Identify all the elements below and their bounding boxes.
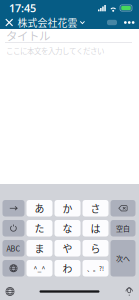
button[interactable]: Delete — [110, 200, 135, 216]
staticText: ここに本文を入力してください — [6, 45, 104, 56]
staticText: は — [90, 221, 100, 235]
button[interactable] — [54, 200, 80, 216]
button[interactable] — [2, 240, 24, 256]
button[interactable]: Preview — [107, 16, 117, 29]
button[interactable] — [82, 200, 108, 216]
staticText: あ — [34, 201, 44, 215]
staticText: わ — [62, 261, 72, 275]
button[interactable]: More options — [117, 16, 139, 29]
staticText: た — [34, 221, 44, 235]
staticText: な — [62, 221, 72, 235]
staticText: ^_^ — [33, 263, 45, 273]
staticText: 、。?! — [87, 264, 104, 273]
staticText: ら — [90, 241, 100, 255]
staticText: ま — [34, 241, 44, 255]
staticText: や — [62, 241, 72, 255]
button[interactable]: Previous candidate — [2, 200, 24, 216]
button[interactable] — [82, 220, 108, 236]
button[interactable] — [26, 200, 52, 216]
button[interactable]: Emoji — [2, 260, 24, 276]
button[interactable] — [26, 240, 52, 256]
button[interactable]: 株式会社花雲 — [17, 16, 85, 29]
button[interactable] — [82, 240, 108, 256]
staticText: か — [62, 201, 72, 215]
button[interactable] — [110, 240, 135, 276]
staticText: さ — [90, 201, 100, 215]
button[interactable] — [26, 220, 52, 236]
staticText: 株式会社花雲 — [17, 15, 77, 30]
button[interactable]: Close — [0, 16, 17, 29]
button[interactable] — [54, 240, 80, 256]
button[interactable] — [82, 260, 108, 276]
button[interactable] — [54, 260, 80, 276]
staticText: タイトル — [6, 27, 50, 44]
button[interactable]: Dictate — [119, 283, 139, 300]
button[interactable] — [26, 260, 52, 276]
staticText: 空白 — [116, 223, 130, 233]
button[interactable] — [54, 220, 80, 236]
button[interactable]: Switch keyboard — [0, 283, 20, 300]
staticText: 17:45 — [9, 1, 36, 15]
staticText: ABC — [6, 243, 20, 253]
button[interactable]: Cycle characters — [2, 220, 24, 236]
button[interactable] — [110, 220, 135, 236]
staticText: 次へ — [116, 253, 130, 263]
